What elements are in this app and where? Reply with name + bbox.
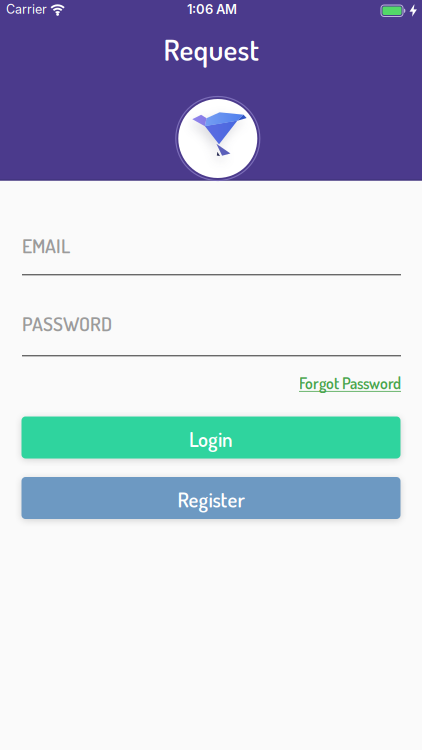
staticText: Request <box>163 31 258 68</box>
button[interactable]: Login <box>21 416 400 458</box>
staticText: Carrier <box>6 1 47 17</box>
button[interactable]: Register <box>21 477 400 519</box>
staticText: Login <box>189 426 233 452</box>
staticText: PASSWORD <box>22 311 112 336</box>
staticText: 1:06 AM <box>187 1 237 17</box>
button[interactable]: EMAIL <box>22 233 401 276</box>
staticText: EMAIL <box>22 233 70 258</box>
button[interactable]: Forgot Password <box>299 373 401 393</box>
button[interactable]: PASSWORD <box>22 311 401 356</box>
staticText: Register <box>177 486 244 512</box>
staticText: Forgot Password <box>299 373 401 393</box>
